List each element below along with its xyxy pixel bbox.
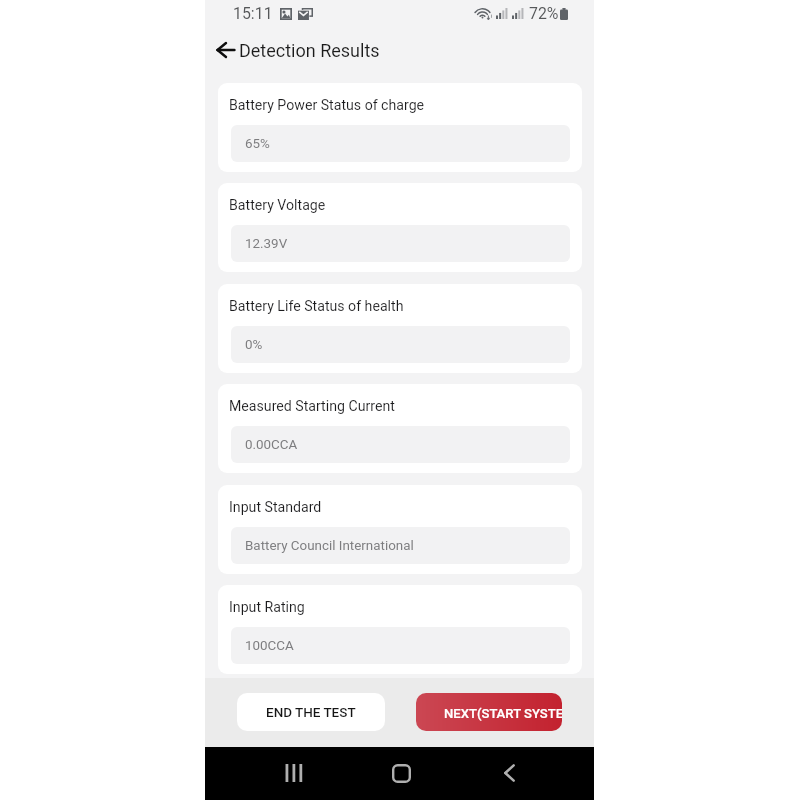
staticText: Battery Council International xyxy=(245,538,414,554)
staticText: Battery Life Status of health xyxy=(229,298,404,315)
staticText: NEXT(START SYSTEM TEST) xyxy=(444,706,562,721)
staticText: Measured Starting Current xyxy=(229,398,395,415)
staticText: 100CCA xyxy=(245,638,294,654)
button[interactable]: Recent apps xyxy=(272,753,312,793)
staticText: Battery Power Status of charge xyxy=(229,97,425,114)
button[interactable]: Measured Starting Current xyxy=(218,384,582,473)
staticText: 12.39V xyxy=(245,236,288,252)
button[interactable]: Battery Life Status of health xyxy=(218,284,582,373)
button[interactable]: Home xyxy=(381,753,421,793)
staticText: 0.00CCA xyxy=(245,437,298,453)
button[interactable]: NEXT(START SYSTEM TEST) xyxy=(416,693,562,731)
staticText: 15:11 xyxy=(233,4,273,23)
staticText: Input Standard xyxy=(229,499,322,516)
staticText: Battery Voltage xyxy=(229,197,326,214)
staticText: Input Rating xyxy=(229,599,305,616)
button[interactable]: Input Standard xyxy=(218,485,582,574)
button[interactable]: END THE TEST xyxy=(237,693,385,731)
staticText: 65% xyxy=(245,136,270,152)
staticText: 0% xyxy=(245,337,263,353)
staticText: END THE TEST xyxy=(266,704,356,720)
button[interactable]: Battery Power Status of charge xyxy=(218,83,582,172)
staticText: 72% xyxy=(529,4,559,23)
button[interactable]: Battery Voltage xyxy=(218,183,582,272)
button[interactable]: Back xyxy=(489,753,529,793)
button[interactable]: Back xyxy=(209,33,243,67)
button[interactable]: Input Rating xyxy=(218,585,582,674)
staticText: Detection Results xyxy=(239,40,380,61)
